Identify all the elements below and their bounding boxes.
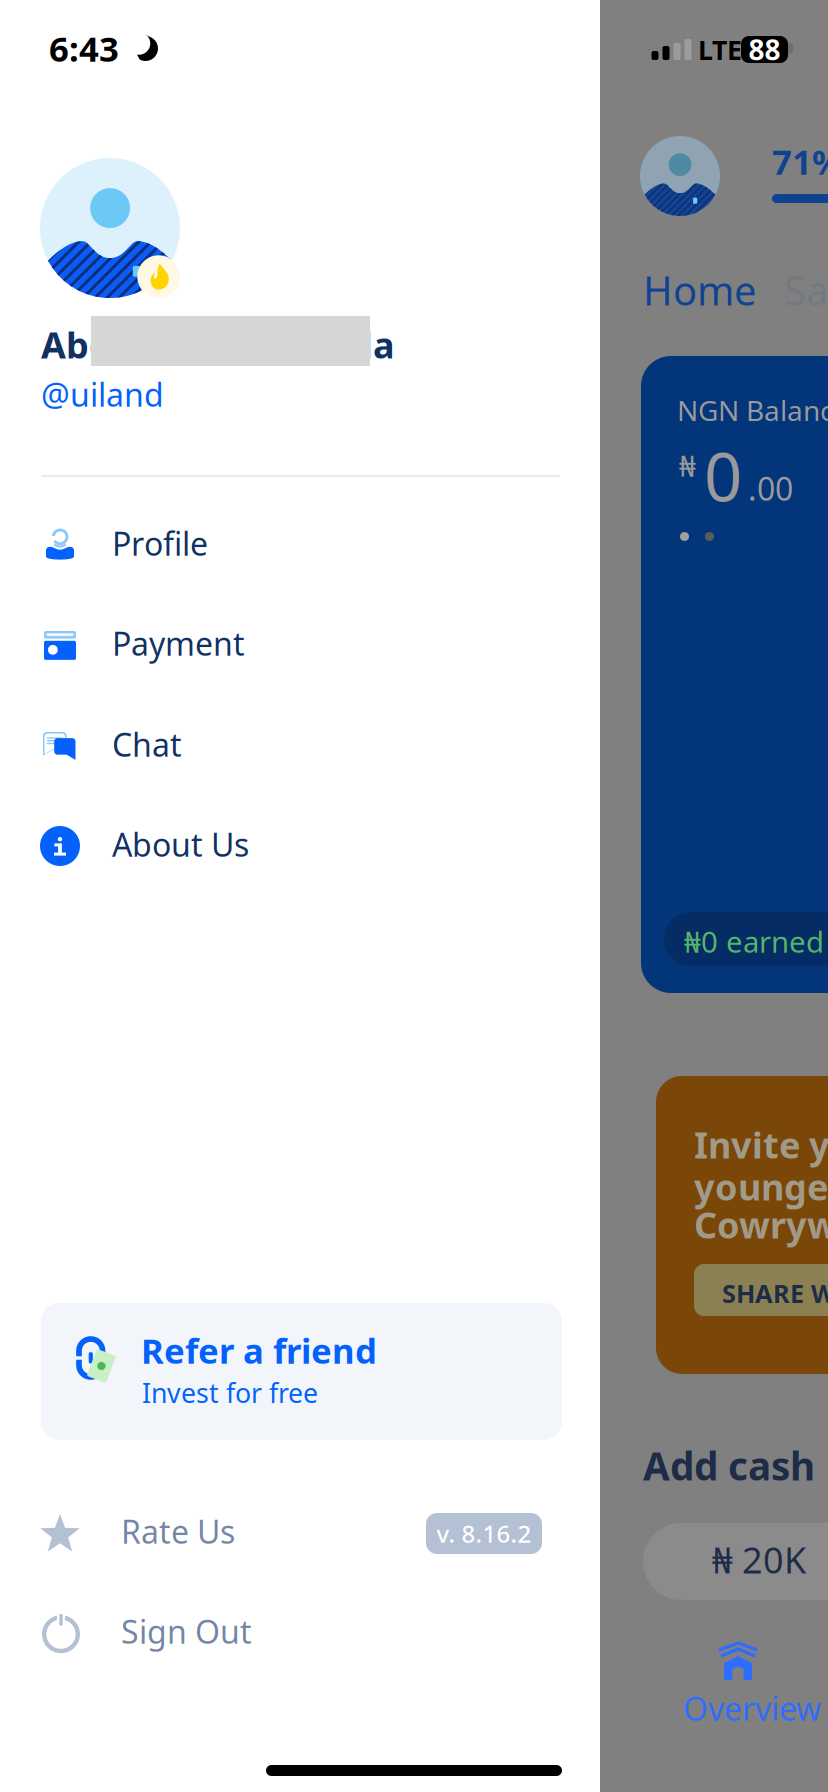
staticText: 0 [704, 431, 742, 520]
staticText: NGN Balance [677, 391, 828, 429]
staticText: Profile [112, 522, 208, 565]
button[interactable]: Payment [0, 0, 600, 100]
button[interactable]: Refer a friend [41, 1303, 562, 1440]
staticText: 71% [772, 138, 828, 184]
staticText: Sign Out [121, 1610, 252, 1653]
staticText: SHARE WITH THEM [722, 1276, 828, 1310]
staticText: Invest for free [142, 1375, 318, 1410]
staticText: LTE [698, 32, 742, 67]
staticText: Save [784, 263, 828, 316]
staticText: Abdullahi Abimbola [41, 321, 395, 368]
button[interactable]: Rate Us [0, 1482, 600, 1582]
staticText: Cowrywise [694, 1201, 828, 1248]
staticText: Refer a friend [141, 1327, 377, 1373]
staticText: Overview [683, 1687, 821, 1730]
staticText: ₦ 20K [712, 1536, 806, 1583]
staticText: 6:43 [49, 25, 119, 71]
staticText: About Us [112, 823, 249, 866]
staticText: Home [643, 263, 757, 316]
staticText: @uiland [41, 373, 164, 416]
staticText: v. 8.16.2 [436, 1518, 531, 1549]
staticText: younger siblings to [694, 1163, 828, 1210]
staticText: Payment [112, 622, 245, 665]
staticText: 88 [748, 31, 780, 68]
staticText: Rate Us [121, 1510, 235, 1553]
staticText: Chat [112, 723, 182, 766]
button[interactable]: About Us [0, 0, 600, 100]
staticText: Invite your [694, 1121, 828, 1168]
staticText: .00 [748, 467, 793, 510]
staticText: ₦0 earned so far [684, 922, 828, 961]
staticText: ₦ [679, 446, 696, 485]
staticText: Add cash [643, 1440, 815, 1491]
button[interactable]: Sign Out [0, 1584, 600, 1684]
button[interactable]: Profile [0, 0, 600, 100]
button[interactable]: Chat [0, 0, 600, 100]
